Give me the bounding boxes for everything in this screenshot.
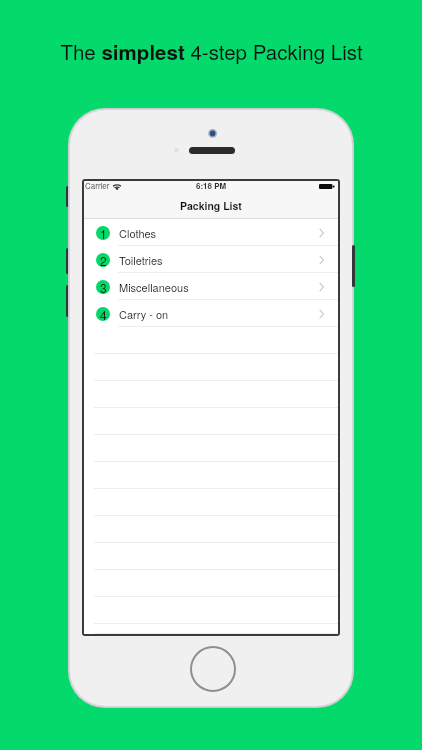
- staticText: Packing List: [180, 198, 242, 213]
- button[interactable]: 3: [84, 273, 338, 300]
- button[interactable]: 4: [84, 300, 338, 327]
- staticText: Miscellaneous: [119, 279, 189, 295]
- staticText: Toiletries: [119, 252, 163, 268]
- staticText: 1: [100, 226, 107, 239]
- staticText: Carrier: [85, 180, 110, 191]
- staticText: Clothes: [119, 225, 157, 241]
- staticText: 4: [100, 307, 107, 320]
- button[interactable]: 1: [84, 219, 338, 246]
- other: Home: [189, 645, 237, 693]
- staticText: The simplest 4-step Packing List: [60, 36, 363, 66]
- button[interactable]: 2: [84, 246, 338, 273]
- staticText: 3: [100, 280, 107, 293]
- staticText: 2: [100, 253, 107, 266]
- staticText: 6:18 PM: [196, 180, 227, 191]
- staticText: Carry - on: [119, 306, 169, 322]
